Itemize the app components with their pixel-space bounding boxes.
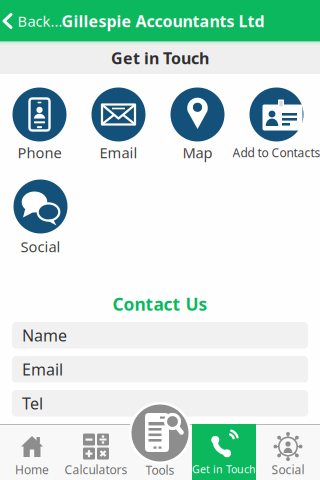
button[interactable]: Phone xyxy=(0,87,79,159)
button[interactable]: Map xyxy=(158,87,237,159)
staticText: Email xyxy=(22,359,63,380)
button[interactable]: Name xyxy=(12,322,308,349)
button[interactable]: Home xyxy=(0,425,64,480)
staticText: Social xyxy=(271,461,304,477)
staticText: Add to Contacts xyxy=(232,144,320,160)
button[interactable]: Calculators xyxy=(64,425,128,480)
staticText: Email xyxy=(99,143,137,162)
button[interactable]: Tel xyxy=(12,390,308,417)
button[interactable]: Email xyxy=(79,87,158,159)
staticText: Map xyxy=(182,143,212,162)
button[interactable]: Social xyxy=(256,425,320,480)
staticText: Get in Touch xyxy=(111,47,209,69)
button[interactable]: Email xyxy=(12,356,308,383)
staticText: Calculators xyxy=(64,461,127,477)
staticText: Contact Us xyxy=(112,292,207,315)
staticText: Phone xyxy=(17,143,61,162)
button[interactable]: Add to Contacts xyxy=(230,87,320,159)
staticText: Get in Touch xyxy=(192,462,256,476)
staticText: Tel xyxy=(22,393,43,414)
button[interactable]: Back... xyxy=(1,11,62,31)
staticText: Name xyxy=(22,325,67,346)
staticText: Home xyxy=(15,461,49,477)
staticText: Social xyxy=(20,237,60,256)
staticText: Back... xyxy=(17,11,62,31)
button[interactable]: Get in Touch xyxy=(192,424,256,480)
staticText: Tools xyxy=(145,462,174,478)
button[interactable]: Social xyxy=(1,179,80,253)
staticText: Gillespie Accountants Ltd xyxy=(61,10,264,32)
button[interactable]: Tools xyxy=(129,402,191,464)
